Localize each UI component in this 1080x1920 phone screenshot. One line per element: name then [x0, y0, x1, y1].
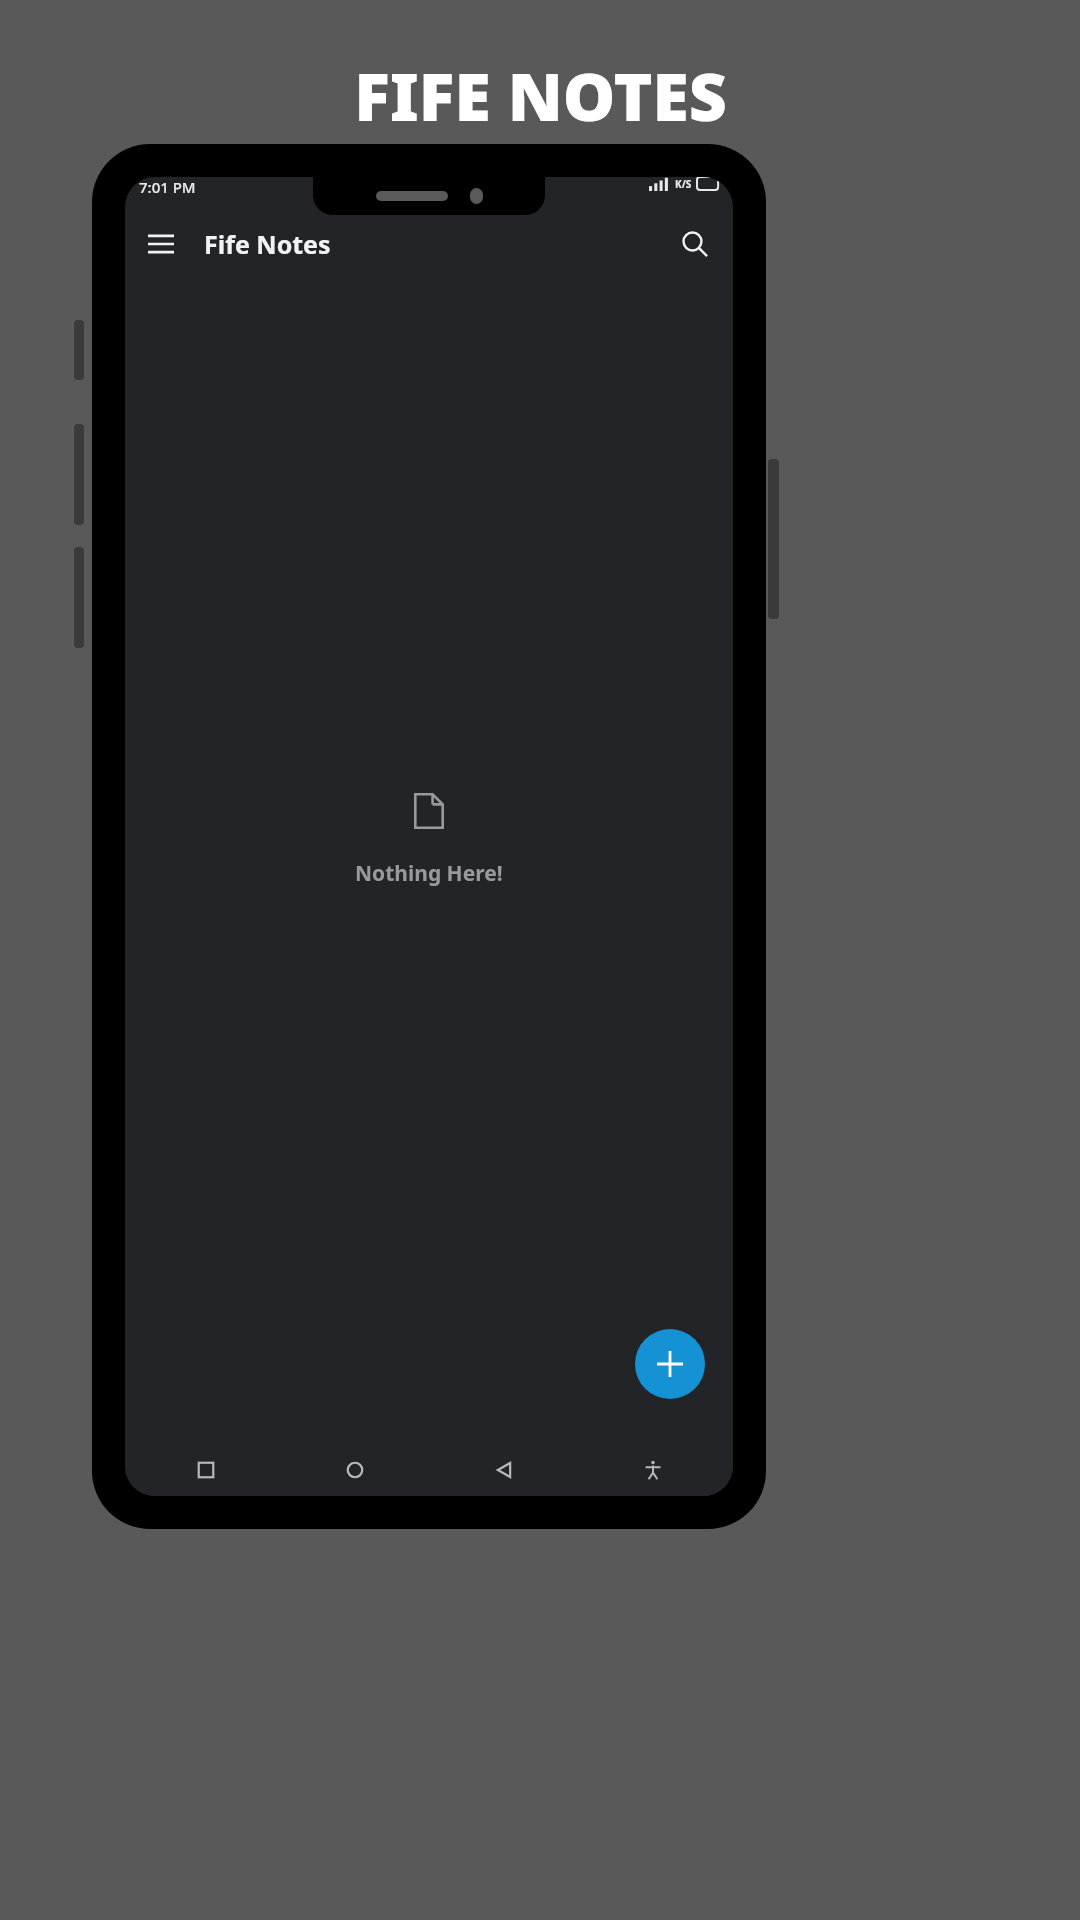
button[interactable]: Accessibility — [631, 1448, 675, 1492]
button[interactable]: Add note — [635, 1329, 705, 1399]
staticText: 7:01 PM — [139, 177, 196, 197]
staticText: FIFE NOTES — [354, 50, 727, 140]
button[interactable]: Recent apps — [184, 1448, 228, 1492]
staticText: K/S — [675, 177, 692, 191]
button[interactable]: Back — [482, 1448, 526, 1492]
button[interactable]: Open navigation menu — [135, 218, 187, 270]
staticText: Fife Notes — [204, 227, 331, 261]
button[interactable]: Search — [669, 218, 721, 270]
staticText: Nothing Here! — [355, 859, 503, 888]
button[interactable]: Home — [333, 1448, 377, 1492]
